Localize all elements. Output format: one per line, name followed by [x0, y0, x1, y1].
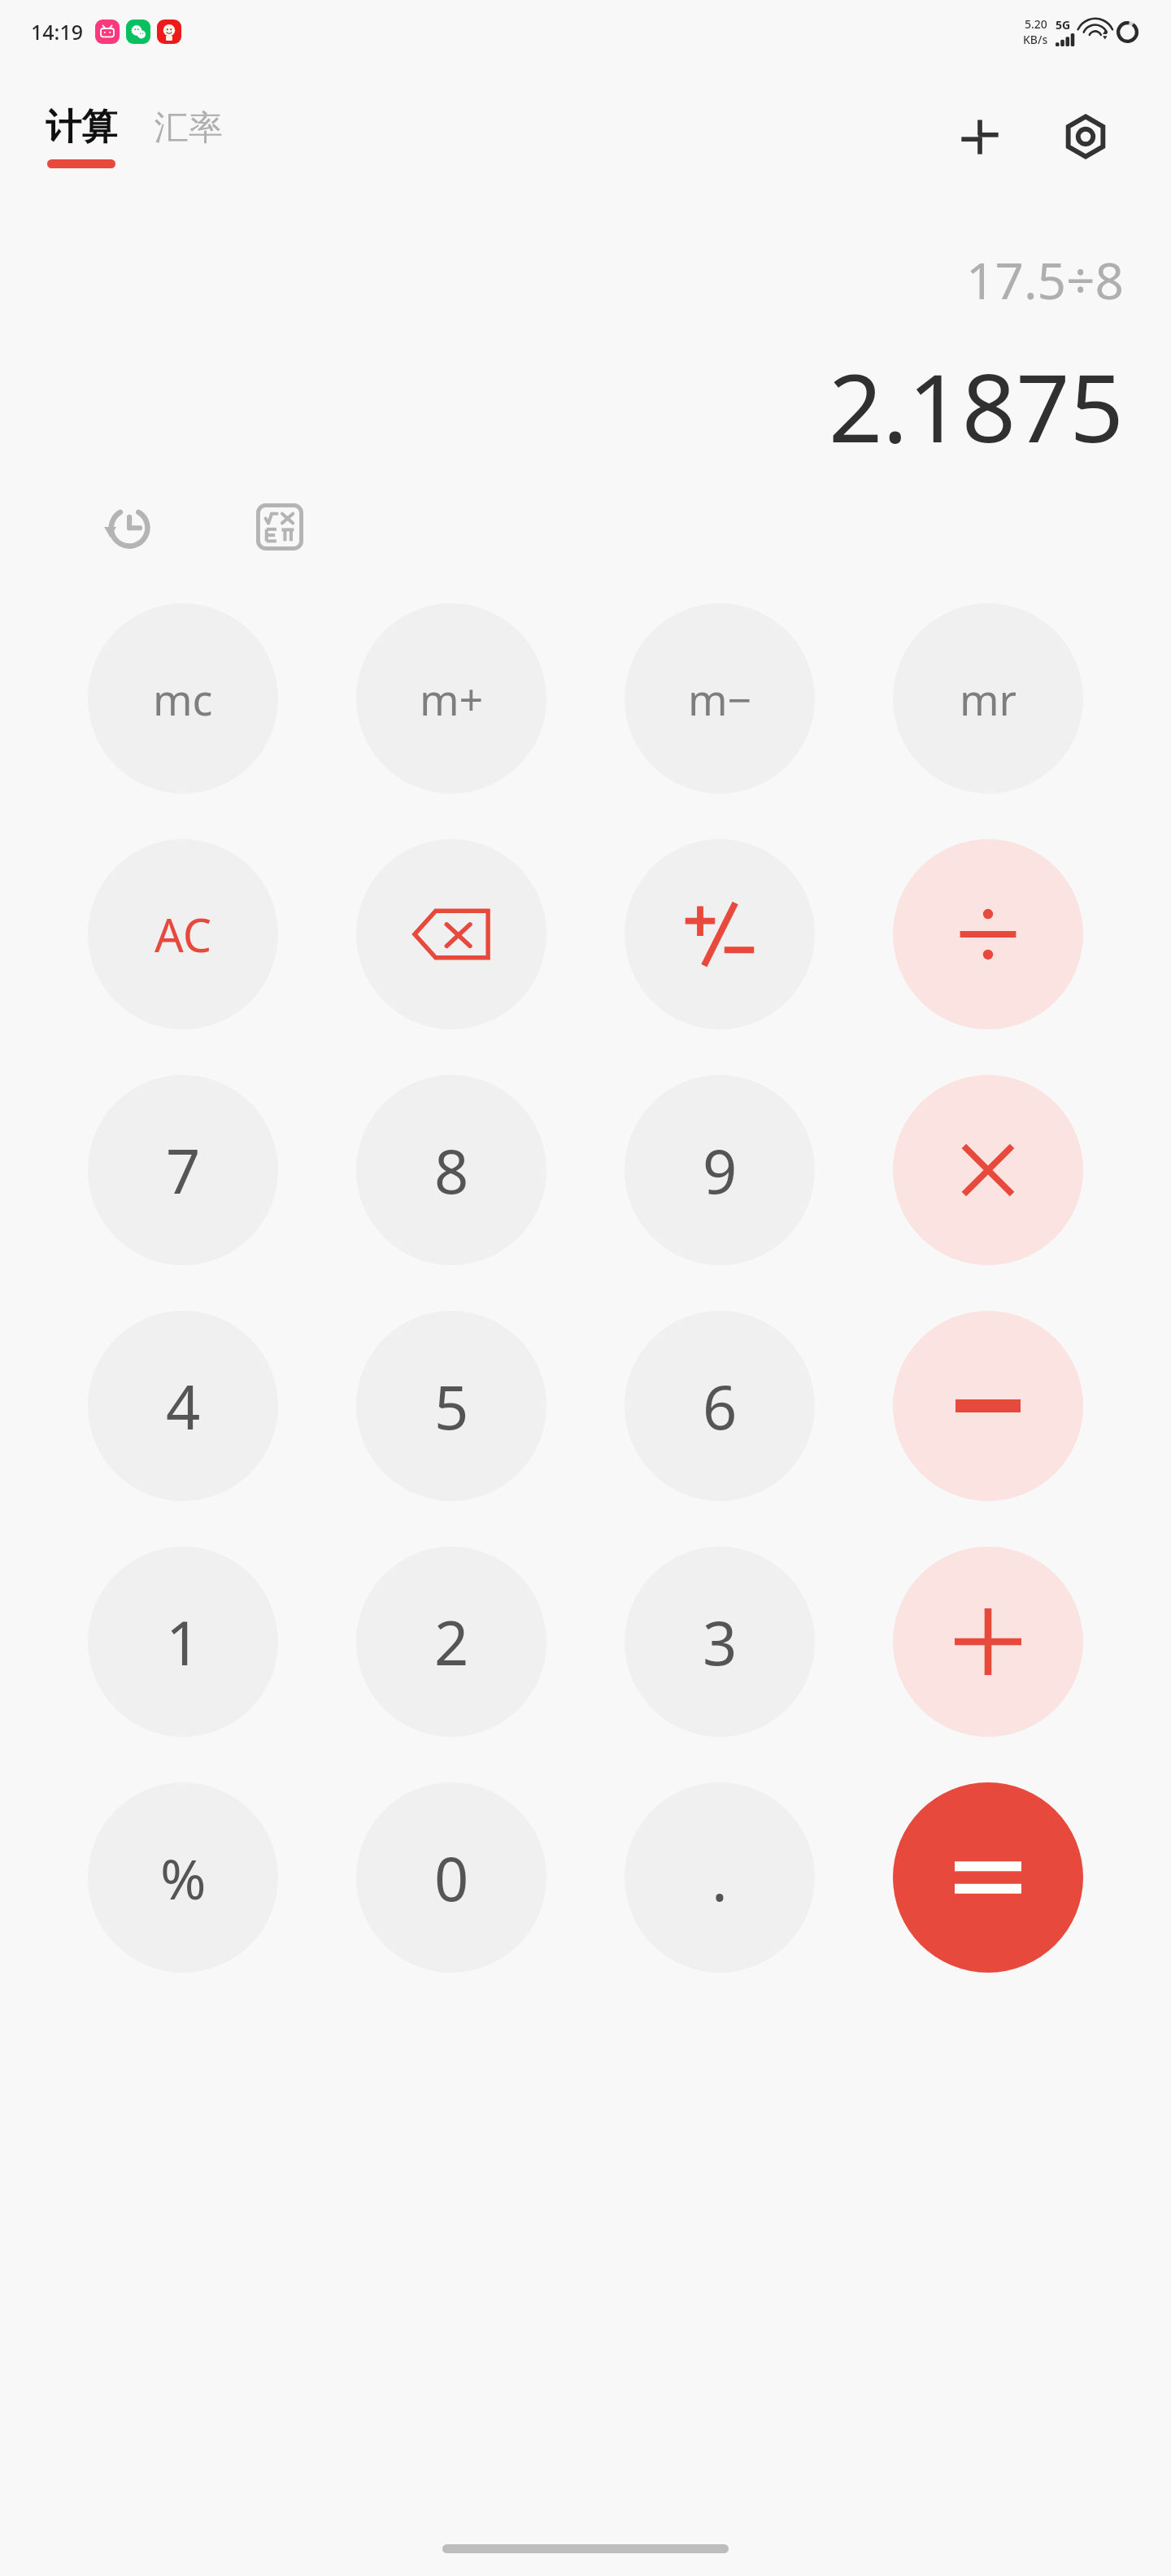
button[interactable]: History [88, 488, 166, 566]
button[interactable]: mr [893, 603, 1083, 794]
button[interactable]: 6 [625, 1311, 815, 1501]
staticText: AC [155, 903, 212, 965]
button[interactable]: m− [625, 603, 815, 794]
staticText: 2.1875 [829, 342, 1124, 470]
button[interactable]: 5 [356, 1311, 546, 1501]
staticText: 计算 [46, 105, 117, 150]
staticText: mr [960, 670, 1017, 728]
button[interactable]: Minus [893, 1311, 1083, 1501]
button[interactable]: mc [88, 603, 278, 794]
staticText: . [712, 1837, 728, 1919]
button[interactable]: 1 [88, 1547, 278, 1737]
staticText: 6 [703, 1365, 738, 1447]
staticText: 3 [703, 1601, 738, 1683]
staticText: m+ [420, 670, 484, 728]
button[interactable]: Fullscreen [945, 102, 1015, 172]
staticText: 4 [166, 1365, 201, 1447]
button[interactable]: Scientific [241, 488, 319, 566]
staticText: 8 [434, 1129, 469, 1212]
staticText: m− [688, 670, 752, 728]
button[interactable]: 2 [356, 1547, 546, 1737]
button[interactable]: 8 [356, 1075, 546, 1265]
button[interactable]: 3 [625, 1547, 815, 1737]
staticText: 5 [434, 1365, 469, 1447]
button[interactable]: 4 [88, 1311, 278, 1501]
button[interactable]: 0 [356, 1782, 546, 1973]
button[interactable]: Settings [1051, 102, 1121, 172]
staticText: 汇率 [155, 107, 223, 150]
button[interactable]: 7 [88, 1075, 278, 1265]
staticText: 5G [1056, 17, 1071, 33]
staticText: 0 [434, 1837, 469, 1919]
button[interactable]: Multiply [893, 1075, 1083, 1265]
staticText: 17.5÷8 [966, 246, 1124, 314]
button[interactable]: 计算 [41, 100, 122, 173]
staticText: 14:19 [31, 18, 84, 46]
staticText: mc [153, 670, 213, 728]
button[interactable]: Plus minus [625, 839, 815, 1029]
staticText: KB/s [1023, 32, 1048, 47]
button[interactable]: . [625, 1782, 815, 1973]
button[interactable]: % [88, 1782, 278, 1973]
staticText: 9 [703, 1129, 738, 1212]
staticText: 7 [166, 1129, 201, 1212]
button[interactable]: Divide [893, 839, 1083, 1029]
button[interactable]: AC [88, 839, 278, 1029]
button[interactable]: Backspace [356, 839, 546, 1029]
staticText: 1 [166, 1601, 201, 1683]
staticText: % [160, 1840, 207, 1916]
staticText: 5.20 [1025, 16, 1047, 32]
button[interactable]: Plus [893, 1547, 1083, 1737]
button[interactable]: Equals [893, 1782, 1083, 1973]
button[interactable]: 9 [625, 1075, 815, 1265]
button[interactable]: m+ [356, 603, 546, 794]
staticText: 2 [434, 1601, 469, 1683]
button[interactable]: 汇率 [150, 107, 228, 168]
